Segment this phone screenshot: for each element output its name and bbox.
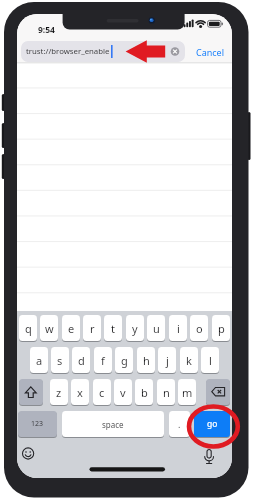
button[interactable] bbox=[19, 379, 43, 405]
staticText: c bbox=[99, 385, 105, 400]
staticText: Cancel bbox=[196, 46, 225, 58]
button[interactable]: z bbox=[50, 379, 68, 405]
button[interactable]: Cancel bbox=[189, 45, 231, 58]
staticText: b bbox=[141, 385, 148, 400]
button[interactable]: u bbox=[147, 315, 165, 341]
button[interactable]: f bbox=[94, 347, 112, 373]
staticText: q bbox=[25, 321, 32, 336]
button[interactable]: space bbox=[62, 411, 164, 437]
button[interactable]: trust://browser_enable bbox=[21, 41, 185, 62]
staticText: p bbox=[218, 321, 225, 336]
staticText: space bbox=[102, 419, 124, 430]
button[interactable]: t bbox=[104, 315, 122, 341]
staticText: 9:54 bbox=[38, 24, 55, 36]
button[interactable]: p bbox=[212, 315, 230, 341]
staticText: z bbox=[56, 385, 62, 400]
button[interactable]: n bbox=[157, 379, 175, 405]
staticText: m bbox=[182, 385, 193, 400]
button[interactable]: v bbox=[114, 379, 132, 405]
staticText: d bbox=[78, 353, 85, 368]
staticText: . bbox=[178, 418, 181, 430]
staticText: k bbox=[186, 353, 192, 368]
button[interactable]: g bbox=[115, 347, 133, 373]
button[interactable] bbox=[206, 379, 230, 405]
button[interactable]: x bbox=[71, 379, 89, 405]
staticText: w bbox=[45, 321, 54, 336]
staticText: j bbox=[166, 353, 169, 368]
staticText: n bbox=[163, 385, 170, 400]
button[interactable]: s bbox=[51, 347, 69, 373]
staticText: trust://browser_enable bbox=[26, 46, 110, 57]
button[interactable]: w bbox=[40, 315, 58, 341]
button[interactable]: j bbox=[158, 347, 176, 373]
staticText: f bbox=[101, 353, 105, 368]
staticText: o bbox=[196, 321, 203, 336]
staticText: e bbox=[68, 321, 75, 336]
button[interactable]: go bbox=[194, 411, 230, 437]
button[interactable]: r bbox=[83, 315, 101, 341]
staticText: r bbox=[90, 321, 95, 336]
staticText: l bbox=[209, 353, 212, 368]
button[interactable]: k bbox=[180, 347, 198, 373]
button[interactable]: 123 bbox=[18, 411, 57, 437]
staticText: go bbox=[207, 418, 218, 430]
staticText: h bbox=[143, 353, 150, 368]
staticText: 123 bbox=[31, 419, 44, 429]
button[interactable]: a bbox=[30, 347, 48, 373]
button[interactable]: h bbox=[137, 347, 155, 373]
button[interactable]: i bbox=[169, 315, 187, 341]
button[interactable]: d bbox=[72, 347, 90, 373]
button[interactable]: c bbox=[93, 379, 111, 405]
staticText: t bbox=[111, 321, 115, 336]
staticText: y bbox=[132, 321, 138, 336]
button[interactable]: q bbox=[19, 315, 37, 341]
staticText: v bbox=[120, 385, 126, 400]
button[interactable]: m bbox=[178, 379, 196, 405]
staticText: a bbox=[36, 353, 43, 368]
staticText: s bbox=[57, 353, 63, 368]
button[interactable]: . bbox=[169, 411, 190, 437]
button[interactable]: l bbox=[201, 347, 219, 373]
staticText: u bbox=[153, 321, 160, 336]
staticText: g bbox=[121, 353, 128, 368]
button[interactable]: o bbox=[190, 315, 208, 341]
staticText: i bbox=[177, 321, 180, 336]
staticText: x bbox=[77, 385, 83, 400]
button[interactable]: e bbox=[62, 315, 80, 341]
button[interactable]: b bbox=[135, 379, 153, 405]
button[interactable]: y bbox=[126, 315, 144, 341]
